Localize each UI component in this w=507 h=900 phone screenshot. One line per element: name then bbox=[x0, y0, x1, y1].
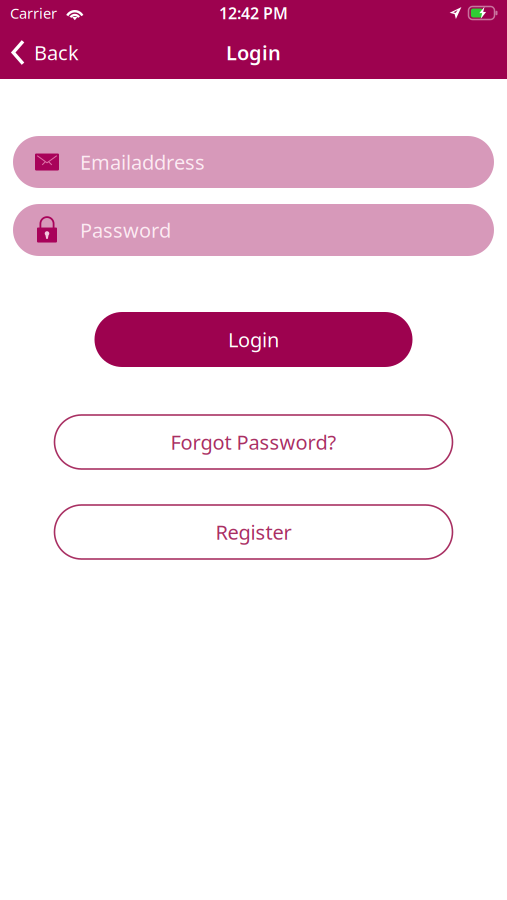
staticText: Emailaddress bbox=[80, 149, 205, 175]
staticText: Password bbox=[80, 217, 171, 243]
staticText: Back bbox=[34, 39, 79, 66]
staticText: 12:42 PM bbox=[219, 2, 288, 24]
button[interactable]: Login bbox=[94, 312, 412, 367]
button[interactable]: Back bbox=[0, 26, 89, 79]
button[interactable]: Forgot Password? bbox=[54, 415, 452, 469]
staticText: Carrier bbox=[10, 3, 57, 23]
button[interactable]: Register bbox=[54, 505, 452, 559]
staticText: Forgot Password? bbox=[170, 429, 336, 455]
staticText: Login bbox=[226, 39, 281, 66]
staticText: Register bbox=[215, 519, 291, 545]
staticText: Login bbox=[228, 326, 279, 353]
